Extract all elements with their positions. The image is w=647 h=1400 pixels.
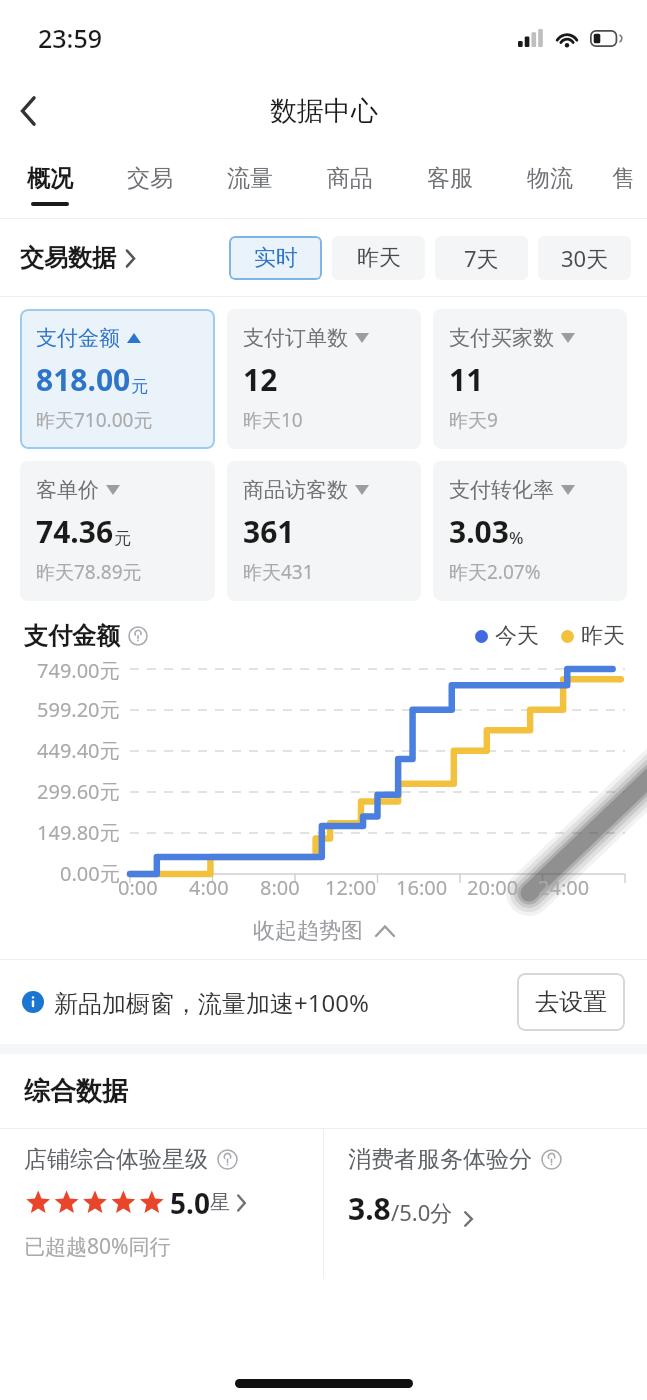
button[interactable]: 交易数据 — [20, 243, 136, 273]
button[interactable]: 商品访客数 — [227, 461, 421, 601]
staticText: 支付订单数 — [243, 325, 348, 351]
button[interactable]: 去设置 — [517, 973, 625, 1031]
staticText: 支付买家数 — [449, 325, 554, 351]
staticText: 商品 — [327, 164, 373, 193]
staticText: 交易 — [127, 164, 173, 193]
button[interactable]: 实时 — [229, 236, 322, 280]
staticText: 4:00 — [189, 874, 229, 901]
button[interactable]: 物流 — [500, 150, 600, 218]
staticText: 支付转化率 — [449, 477, 554, 503]
button[interactable]: 支付金额 — [20, 309, 215, 449]
staticText: 12:00 — [325, 874, 377, 901]
staticText: 元 — [114, 528, 131, 549]
button[interactable]: 客服 — [400, 150, 500, 218]
staticText: 361 — [243, 511, 295, 552]
button[interactable]: 30天 — [538, 236, 631, 280]
staticText: 749.00元 — [37, 657, 120, 684]
button[interactable]: 商品 — [300, 150, 400, 218]
staticText: 昨天9 — [449, 407, 498, 433]
button[interactable]: 流量 — [200, 150, 300, 218]
button[interactable]: 交易 — [100, 150, 200, 218]
staticText: 商品访客数 — [243, 477, 348, 503]
staticText: 新品加橱窗，流量加速+100% — [54, 986, 369, 1019]
staticText: 16:00 — [396, 874, 448, 901]
button[interactable]: 支付买家数 — [433, 309, 627, 449]
button[interactable]: 7天 — [435, 236, 528, 280]
staticText: 818.00 — [36, 359, 131, 400]
staticText: 店铺综合体验星级 — [24, 1145, 208, 1174]
staticText: 概况 — [27, 164, 73, 193]
staticText: 11 — [449, 359, 484, 400]
staticText: 0:00 — [118, 874, 158, 901]
staticText: 昨天431 — [243, 559, 314, 585]
staticText: 8:00 — [260, 874, 300, 901]
staticText: 物流 — [527, 164, 573, 193]
button[interactable]: 收起趋势图 — [0, 903, 647, 959]
button[interactable]: 客单价 — [20, 461, 215, 601]
staticText: 今天 — [495, 622, 539, 650]
button[interactable]: 新品加橱窗，流量加速+100% — [22, 960, 625, 1044]
button[interactable]: 昨天 — [332, 236, 425, 280]
button[interactable]: Back — [0, 82, 58, 140]
staticText: 23:59 — [38, 21, 103, 55]
staticText: 售 — [612, 164, 635, 193]
button[interactable]: 帮助 — [128, 626, 148, 646]
staticText: 消费者服务体验分 — [348, 1145, 532, 1174]
staticText: 30天 — [561, 243, 609, 273]
staticText: 74.36 — [36, 511, 114, 552]
staticText: 客服 — [427, 164, 473, 193]
staticText: 已超越80%同行 — [24, 1232, 171, 1261]
staticText: 数据中心 — [270, 94, 378, 128]
button[interactable]: 消费者服务体验分 — [324, 1129, 647, 1279]
button[interactable]: 支付转化率 — [433, 461, 627, 601]
staticText: % — [509, 526, 524, 549]
button[interactable]: 店铺综合体验星级 — [0, 1129, 323, 1279]
button[interactable]: 售 — [600, 150, 647, 218]
staticText: 299.60元 — [37, 778, 120, 805]
staticText: 3.8 — [348, 1188, 391, 1229]
staticText: 交易数据 — [20, 243, 116, 273]
staticText: 收起趋势图 — [253, 917, 363, 945]
staticText: 20:00 — [467, 874, 519, 901]
staticText: 支付金额 — [36, 325, 120, 351]
staticText: 昨天 — [357, 244, 401, 272]
staticText: 599.20元 — [37, 696, 120, 723]
staticText: 449.40元 — [37, 737, 120, 764]
staticText: 昨天710.00元 — [36, 407, 153, 433]
staticText: 去设置 — [535, 987, 607, 1017]
staticText: 24:00 — [538, 874, 590, 901]
staticText: 支付金额 — [24, 621, 120, 651]
staticText: 12 — [243, 359, 278, 400]
staticText: 3.03 — [449, 511, 509, 552]
staticText: 5.0 — [170, 1184, 210, 1222]
staticText: 流量 — [227, 164, 273, 193]
button[interactable]: 支付订单数 — [227, 309, 421, 449]
staticText: 昨天 — [581, 622, 625, 650]
staticText: 149.80元 — [37, 819, 120, 846]
staticText: /5.0分 — [391, 1197, 453, 1227]
staticText: 客单价 — [36, 477, 99, 503]
staticText: 昨天78.89元 — [36, 559, 142, 585]
staticText: 实时 — [254, 244, 298, 272]
staticText: 昨天10 — [243, 407, 303, 433]
staticText: 综合数据 — [24, 1075, 128, 1108]
staticText: 元 — [131, 376, 148, 397]
staticText: 0.00元 — [60, 860, 120, 887]
button[interactable]: 概况 — [0, 150, 100, 218]
staticText: 星 — [210, 1190, 230, 1215]
staticText: 昨天2.07% — [449, 559, 541, 585]
staticText: 7天 — [464, 243, 499, 273]
